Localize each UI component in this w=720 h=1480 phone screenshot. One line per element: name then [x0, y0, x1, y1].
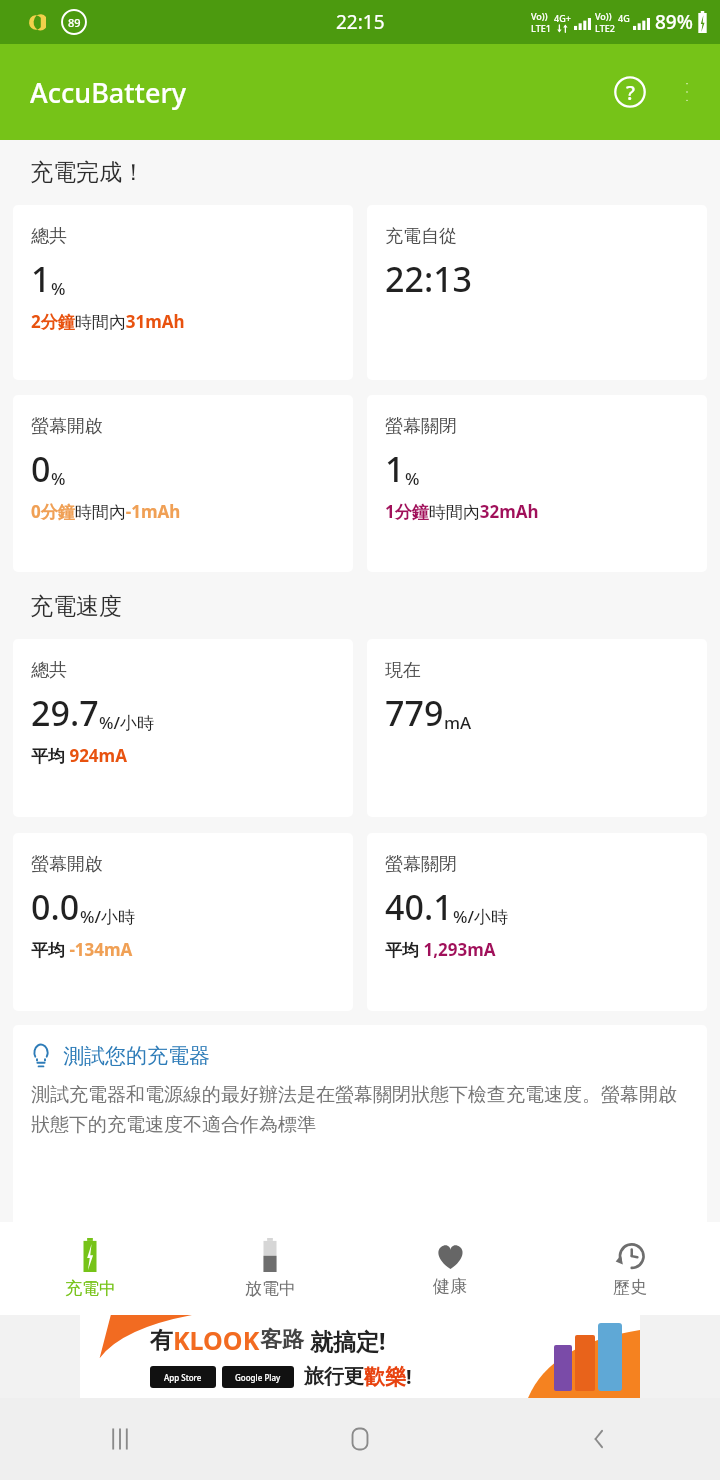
staticText: %	[51, 467, 66, 490]
staticText: 平均 924mA	[31, 744, 127, 767]
staticText: Google Play	[235, 1372, 281, 1383]
staticText: 40.1	[385, 884, 453, 930]
button[interactable]: 螢幕關閉	[367, 395, 707, 572]
button[interactable]: 充電中	[0, 1230, 180, 1307]
staticText: App Store	[164, 1372, 202, 1383]
staticText: 旅行更	[304, 1364, 364, 1389]
staticText: 29.7	[31, 690, 99, 736]
staticText: 2分鐘時間內31mAh	[31, 310, 185, 333]
staticText: 測試您的充電器	[63, 1043, 210, 1069]
staticText: 1分鐘時間內32mAh	[385, 500, 539, 523]
button[interactable]: 螢幕開啟	[13, 395, 353, 572]
staticText: %	[51, 277, 66, 300]
button[interactable]: Home	[240, 1398, 480, 1480]
button[interactable]: 螢幕開啟	[13, 833, 353, 1011]
button[interactable]: Back	[480, 1398, 720, 1480]
staticText: mA	[444, 711, 472, 734]
staticText: 就搞定!	[304, 1325, 386, 1356]
staticText: 平均 -134mA	[31, 938, 133, 961]
staticText: 現在	[385, 659, 421, 682]
staticText: 0.0	[31, 884, 80, 930]
button[interactable]: More options	[672, 71, 702, 113]
staticText: 0分鐘時間內-1mAh	[31, 500, 181, 523]
staticText: 充電中	[65, 1278, 116, 1299]
staticText: 4G+	[554, 12, 571, 24]
staticText: 歷史	[613, 1277, 647, 1298]
staticText: 779	[385, 690, 444, 736]
staticText: 歡樂	[364, 1364, 406, 1390]
staticText: 螢幕開啟	[31, 415, 103, 438]
staticText: 充電完成！	[30, 158, 145, 187]
button[interactable]: 充電自從	[367, 205, 707, 380]
staticText: !	[406, 1363, 412, 1390]
staticText: 總共	[31, 225, 67, 248]
staticText: 89%	[655, 9, 693, 35]
button[interactable]: 健康	[360, 1232, 540, 1305]
staticText: 總共	[31, 659, 67, 682]
button[interactable]: 放電中	[180, 1230, 360, 1307]
staticText: 22:13	[385, 256, 473, 302]
button[interactable]: 總共	[13, 205, 353, 380]
staticText: 螢幕關閉	[385, 853, 457, 876]
staticText: 客路	[260, 1326, 304, 1354]
staticText: Vo))	[531, 10, 548, 22]
staticText: 1	[385, 446, 405, 492]
staticText: 螢幕關閉	[385, 415, 457, 438]
staticText: 充電速度	[30, 592, 122, 621]
button[interactable]: Advertisement	[80, 1315, 640, 1398]
staticText: 0	[31, 446, 51, 492]
staticText: LTE2	[595, 22, 615, 34]
staticText: %/小時	[453, 905, 509, 928]
staticText: %/小時	[80, 905, 136, 928]
button[interactable]: 現在	[367, 639, 707, 817]
staticText: 4G	[618, 12, 630, 24]
staticText: %/小時	[99, 711, 155, 734]
staticText: 22:15	[336, 9, 385, 35]
staticText: ?	[626, 79, 635, 106]
button[interactable]: 螢幕關閉	[367, 833, 707, 1011]
staticText: 測試充電器和電源線的最好辦法是在螢幕關閉狀態下檢查充電速度。螢幕開啟狀態下的充電…	[31, 1083, 691, 1136]
staticText: KLOOK	[173, 1323, 260, 1357]
staticText: 放電中	[245, 1278, 296, 1299]
button[interactable]: 歷史	[540, 1232, 720, 1306]
staticText: AccuBattery	[30, 74, 187, 111]
staticText: 有	[150, 1326, 173, 1355]
staticText: 充電自從	[385, 225, 457, 248]
staticText: 螢幕開啟	[31, 853, 103, 876]
staticText: 平均 1,293mA	[385, 938, 496, 961]
staticText: 健康	[433, 1276, 467, 1297]
staticText: %	[405, 467, 420, 490]
button[interactable]: Recents	[0, 1398, 240, 1480]
staticText: Vo))	[595, 10, 612, 22]
button[interactable]: Help	[606, 68, 654, 116]
staticText: 89	[68, 15, 81, 30]
staticText: LTE1	[531, 22, 551, 34]
staticText: 1	[31, 256, 51, 302]
button[interactable]: 測試您的充電器	[13, 1025, 707, 1222]
button[interactable]: 總共	[13, 639, 353, 817]
